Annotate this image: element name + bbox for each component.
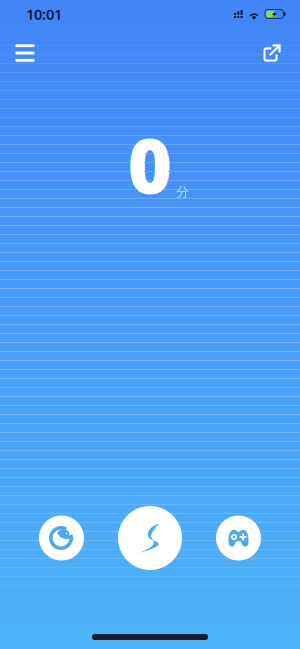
staticText: 0 (127, 113, 172, 214)
staticText: 分 (176, 184, 189, 200)
button[interactable]: Start (118, 506, 182, 570)
button[interactable]: Browser (39, 515, 84, 560)
button[interactable]: Games (216, 515, 261, 560)
button[interactable]: Share (250, 31, 294, 75)
button[interactable]: Menu (3, 31, 47, 75)
staticText: 10:01 (26, 4, 62, 24)
